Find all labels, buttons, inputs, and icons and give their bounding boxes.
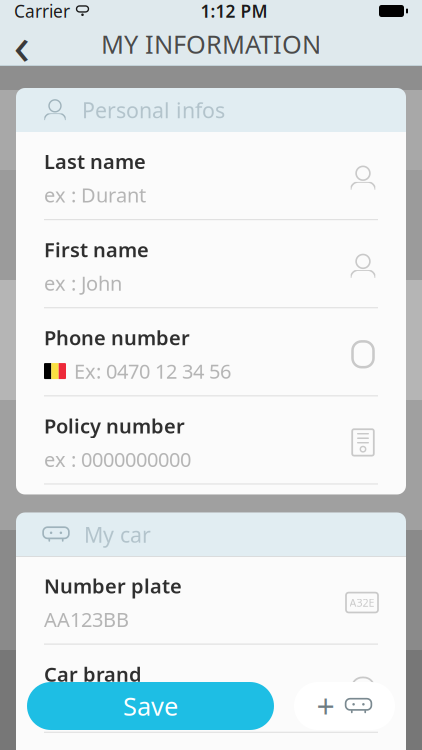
staticText: - Select a brand - <box>44 694 197 721</box>
button[interactable]: Save <box>27 682 274 730</box>
staticText: Personal infos <box>82 96 225 124</box>
staticText: AA123BB <box>44 606 129 633</box>
staticText: MY INFORMATION <box>101 27 321 61</box>
staticText: ‹ <box>13 9 30 79</box>
staticText: First name <box>44 236 149 263</box>
staticText: Car brand <box>44 661 142 687</box>
button[interactable]: Back <box>0 22 44 66</box>
staticText: A32E <box>349 595 374 610</box>
staticText: Last name <box>44 148 146 175</box>
staticText: ex : John <box>44 270 122 296</box>
staticText: + <box>316 685 334 727</box>
staticText: Policy number <box>44 412 185 439</box>
staticText: Ex: 0470 12 34 56 <box>74 358 231 384</box>
staticText: Save <box>123 689 178 723</box>
button[interactable]: Add a car <box>294 682 395 730</box>
staticText: Number plate <box>44 572 182 599</box>
staticText: 1:12 PM <box>200 0 267 22</box>
staticText: Phone number <box>44 324 190 351</box>
staticText: ex : Durant <box>44 182 146 208</box>
staticText: Carrier <box>14 0 70 22</box>
staticText: ex : 0000000000 <box>44 446 191 472</box>
staticText: My car <box>84 520 151 549</box>
